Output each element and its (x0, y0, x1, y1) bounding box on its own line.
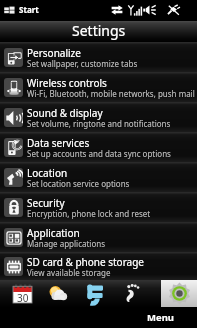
button[interactable]: Menu (123, 307, 197, 328)
staticText: Data services (27, 136, 90, 150)
button[interactable]: Wireless controls (0, 72, 197, 102)
staticText: 30 (17, 291, 29, 303)
staticText: Set volume, ringtone and notifications (27, 118, 171, 129)
staticText: Sound & display (27, 106, 103, 120)
button[interactable]: Data services (0, 132, 197, 162)
button[interactable]: SD card & phone storage (0, 252, 197, 280)
button[interactable]: Settings (161, 280, 197, 307)
staticText: Set wallpaper, customize tabs (27, 58, 138, 69)
button[interactable]: Twitter (80, 280, 106, 307)
button[interactable]: Footprints (117, 280, 143, 307)
button[interactable]: Settings (166, 280, 192, 307)
button[interactable]: Weather (44, 280, 70, 307)
staticText: Manage applications (27, 238, 106, 249)
button[interactable]: Personalize (0, 42, 197, 72)
button[interactable]: Sound & display (0, 102, 197, 132)
staticText: Security (27, 196, 65, 210)
staticText: Set location service options (27, 178, 130, 189)
staticText: Encryption, phone lock and reset (27, 208, 151, 219)
staticText: Wireless controls (27, 76, 107, 90)
staticText: View available storage (27, 267, 111, 278)
staticText: Start (19, 4, 39, 15)
button[interactable]: Calendar (9, 280, 35, 307)
staticText: Application (27, 226, 80, 240)
button[interactable]: Application (0, 222, 197, 252)
staticText: Location (27, 166, 68, 180)
staticText: Set up accounts and data sync options (27, 148, 171, 159)
staticText: Personalize (27, 46, 81, 60)
button[interactable]: Location (0, 162, 197, 192)
staticText: SD card & phone storage (27, 255, 144, 269)
staticText: Menu (147, 311, 174, 324)
button[interactable]: Security (0, 192, 197, 222)
button[interactable]: Start (4, 0, 39, 21)
staticText: Wi-Fi, Bluetooth, mobile networks, push … (27, 88, 195, 99)
staticText: Settings (72, 21, 126, 40)
